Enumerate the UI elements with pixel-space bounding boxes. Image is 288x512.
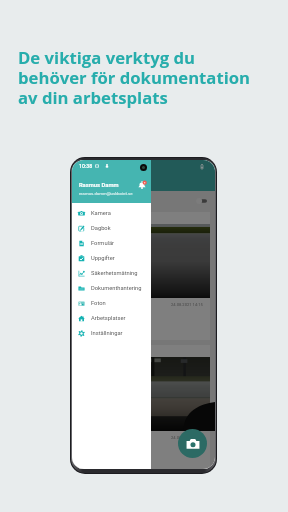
staticText: Skadad skylt vid infarten vägskylt. [82,450,152,455]
staticText: Foton [91,300,106,307]
button[interactable]: Dokumenthantering [72,281,151,296]
button[interactable]: Dagbok [72,221,151,236]
button[interactable]: Arbetsplatser [72,311,151,326]
staticText: Skadad skylt vid infarten vägskylt. [82,317,152,322]
button[interactable]: Säkerhetsmätning [72,266,151,281]
staticText: Kamera [91,210,111,217]
staticText: 24.08.2021 14:15 [171,435,203,440]
button[interactable]: 24.08.2021 14:15 [77,345,210,469]
button[interactable]: 24.08.2021 14:15 [77,212,210,340]
staticText: Dokumenthantering [91,285,142,292]
staticText: rasmus.damm@uskkoint.se [79,191,133,196]
staticText: Säkerhetsmätning [91,270,138,277]
staticText: 24.08.2021 14:15 [171,302,203,307]
button[interactable]: Inställningar [72,326,151,341]
staticText: Arbetsplatser [91,315,126,322]
button[interactable]: Uppgifter [72,251,151,266]
button[interactable]: Kamera [72,206,151,221]
button[interactable]: Notifications [137,180,147,190]
staticText: Formulär [91,240,115,247]
staticText: Inställningar [91,330,123,337]
button[interactable]: Take photo [178,429,207,458]
staticText: Dagbok [91,225,111,232]
button[interactable]: Foton [72,296,151,311]
staticText: De viktiga verktyg du behöver för dokume… [18,46,251,109]
button[interactable]: Toggle [196,198,207,204]
button[interactable]: Formulär [72,236,151,251]
staticText: Uppgifter [91,255,115,262]
staticText: Rasmus Damm [79,182,119,189]
staticText: 10:38 [79,163,93,169]
